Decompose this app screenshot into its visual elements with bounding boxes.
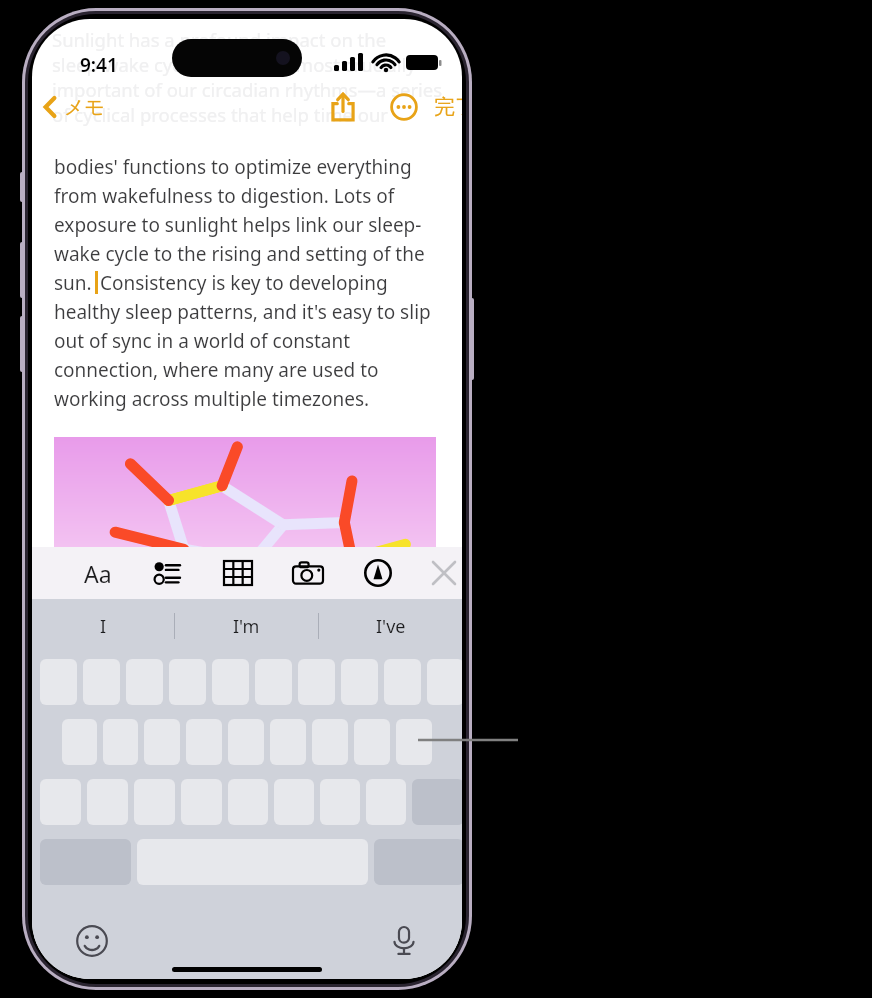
staticText: 9:41 [80, 52, 118, 78]
button[interactable] [62, 719, 97, 765]
button[interactable] [298, 659, 335, 705]
staticText: I've [376, 614, 406, 639]
button[interactable] [186, 719, 222, 765]
staticText: exposure to sunlight helps link our slee… [54, 212, 422, 238]
button[interactable] [312, 719, 348, 765]
button[interactable]: 完了 [430, 85, 462, 129]
staticText: of cyclical processes that help time our [52, 102, 388, 127]
button[interactable]: I [32, 599, 174, 653]
staticText: out of sync in a world of constant [54, 328, 351, 354]
staticText: sun. [54, 270, 92, 296]
button[interactable]: Close [418, 547, 462, 599]
button[interactable] [341, 659, 378, 705]
button[interactable]: Camera [278, 547, 338, 599]
button[interactable]: Checklist [138, 547, 198, 599]
staticText: wake cycle to the rising and setting of … [54, 241, 425, 267]
button[interactable]: I've [319, 599, 462, 653]
button[interactable] [354, 719, 390, 765]
button[interactable]: I'm [175, 599, 318, 653]
button[interactable]: Emoji [72, 921, 112, 961]
button[interactable] [126, 659, 163, 705]
button[interactable] [255, 659, 292, 705]
button[interactable] [103, 719, 138, 765]
staticText: メモ [64, 95, 105, 120]
staticText: from wakefulness to digestion. Lots of [54, 183, 395, 209]
button[interactable] [270, 719, 306, 765]
staticText: I'm [233, 614, 260, 639]
button[interactable]: Text format [68, 547, 128, 599]
button[interactable] [396, 719, 432, 765]
button[interactable]: Dictate [384, 921, 424, 961]
button[interactable] [228, 719, 264, 765]
staticText: working across multiple timezones. [54, 386, 370, 412]
staticText: important of our circadian rhythms—a ser… [52, 77, 443, 102]
button[interactable] [169, 659, 206, 705]
staticText: Consistency is key to developing [100, 270, 388, 296]
staticText: sleep-wake cycle, and is the most crucia… [52, 52, 416, 77]
staticText: Aa [84, 558, 112, 589]
staticText: I [100, 614, 107, 639]
button[interactable]: More [380, 85, 428, 129]
button[interactable] [384, 659, 421, 705]
button[interactable] [40, 659, 77, 705]
button[interactable]: Share [320, 85, 366, 129]
button[interactable]: Markup [348, 547, 408, 599]
button[interactable] [212, 659, 249, 705]
button[interactable] [83, 659, 120, 705]
button[interactable]: Table [208, 547, 268, 599]
staticText: connection, where many are used to [54, 357, 379, 383]
button[interactable]: メモ [36, 85, 109, 129]
staticText: bodies' functions to optimize everything [54, 154, 412, 180]
staticText: healthy sleep patterns, and it's easy to… [54, 299, 431, 325]
button[interactable] [144, 719, 180, 765]
staticText: 完了 [434, 94, 462, 120]
staticText: Sunlight has a profound impact on the [52, 27, 387, 52]
